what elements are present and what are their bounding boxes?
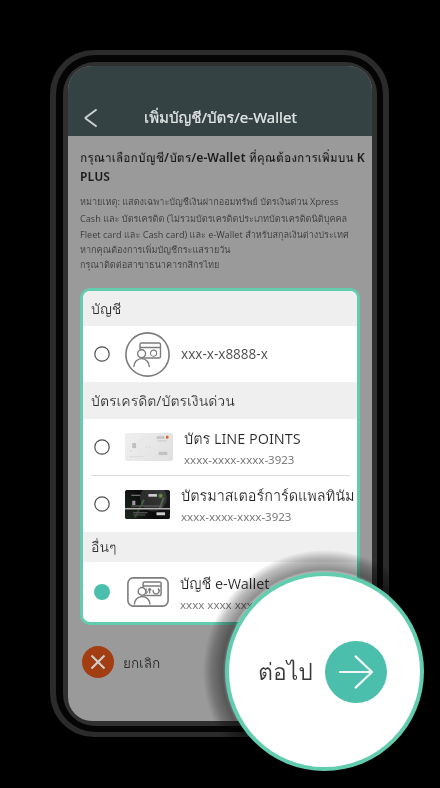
- staticText: บัญชี: [91, 298, 122, 320]
- button[interactable]: บัญชี e-Wallet: [83, 562, 357, 622]
- button[interactable]: Next: [325, 641, 387, 703]
- staticText: บัตรมาสเตอร์การ์ดแพลทินัม: [181, 484, 355, 507]
- staticText: xxx-x-x8888-x: [181, 345, 268, 363]
- staticText: บัตร LINE POINTS: [184, 427, 301, 450]
- staticText: ยกเลิก: [123, 652, 161, 673]
- button[interactable]: xxx-x-x8888-x: [83, 326, 357, 382]
- staticText: หมายเหตุ: แสดงเฉพาะบัญชีเงินฝากออมทรัพย์…: [80, 195, 349, 272]
- staticText: xxxx-xxxx-xxxx-3923: [181, 509, 292, 525]
- staticText: xxxx-xxxx-xxxx-3923: [184, 452, 295, 468]
- button[interactable]: บัตร LINE POINTS: [83, 419, 357, 475]
- button[interactable]: ยกเลิก: [82, 646, 161, 678]
- staticText: กรุณาเลือกบัญชี/บัตร/e-Wallet ที่คุณต้อง…: [80, 148, 365, 184]
- staticText: ต่อไป: [258, 654, 313, 691]
- staticText: เพิ่มบัญชี/บัตร/e-Wallet: [144, 106, 297, 130]
- staticText: บัตรเครดิต/บัตรเงินด่วน: [91, 390, 235, 412]
- button[interactable]: Back: [74, 101, 108, 135]
- staticText: xxxx xxxx xxxx: [180, 597, 259, 613]
- staticText: บัญชี e-Wallet: [180, 572, 270, 595]
- staticText: อื่นๆ: [91, 536, 117, 558]
- button[interactable]: บัตรมาสเตอร์การ์ดแพลทินัม: [83, 476, 357, 532]
